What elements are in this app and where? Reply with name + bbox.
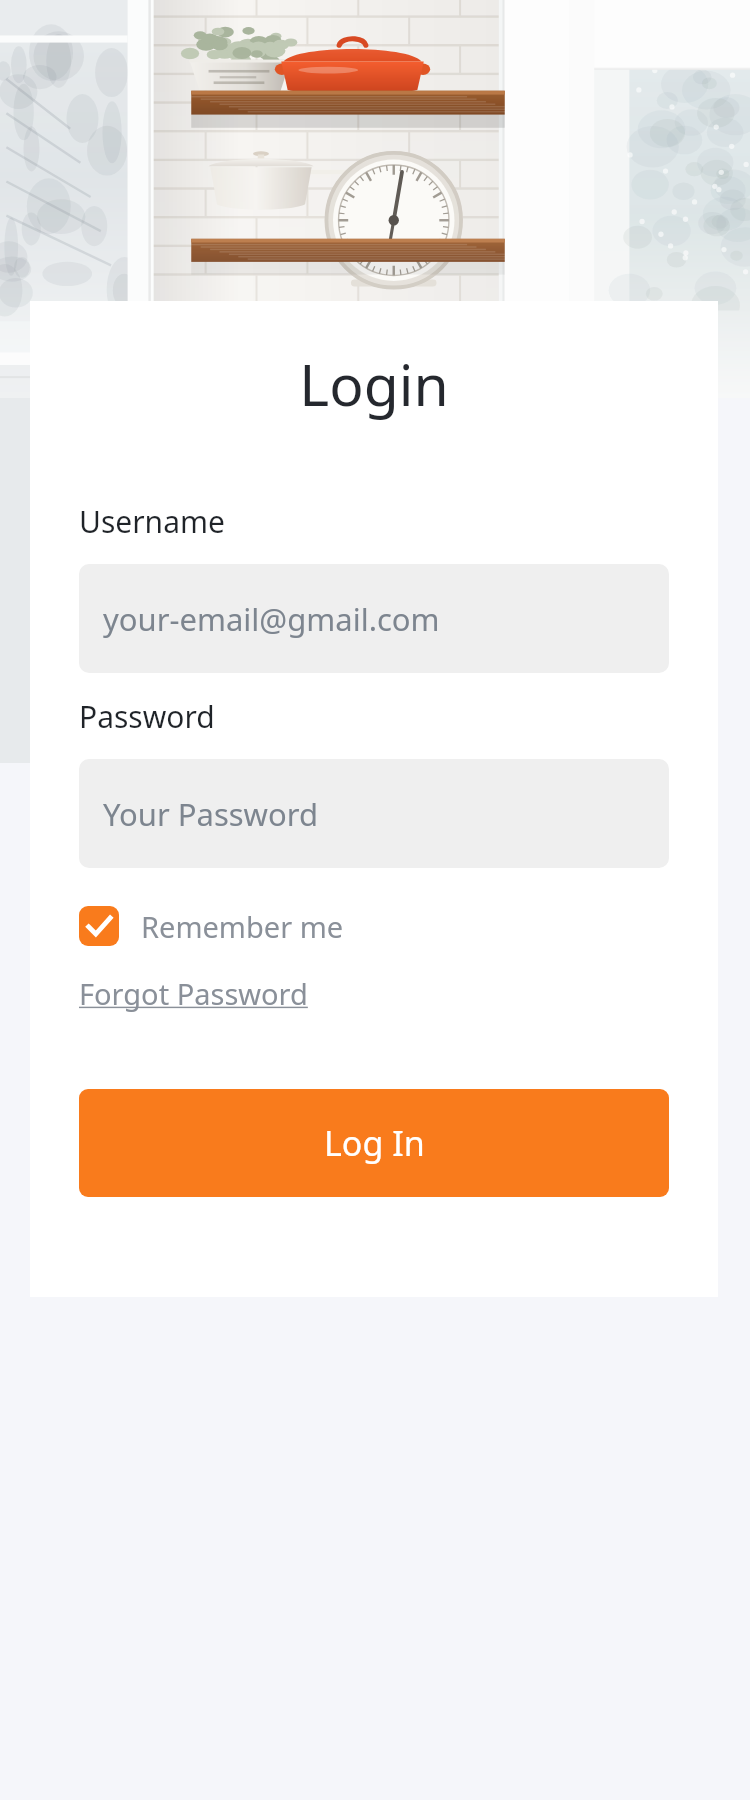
button[interactable]: Forgot Password bbox=[79, 974, 308, 1013]
staticText: Log In bbox=[324, 1120, 425, 1166]
staticText: your-email@gmail.com bbox=[103, 598, 440, 640]
staticText: Forgot Password bbox=[79, 974, 308, 1013]
staticText: Password bbox=[79, 696, 215, 737]
staticText: Your Password bbox=[103, 793, 318, 835]
button[interactable]: Your Password bbox=[79, 759, 669, 868]
button[interactable]: your-email@gmail.com bbox=[79, 564, 669, 673]
staticText: Username bbox=[79, 501, 225, 542]
staticText: Login bbox=[30, 345, 718, 423]
button[interactable]: Remember me bbox=[79, 906, 354, 946]
staticText: Remember me bbox=[141, 907, 344, 946]
button[interactable]: Log In bbox=[79, 1089, 669, 1197]
